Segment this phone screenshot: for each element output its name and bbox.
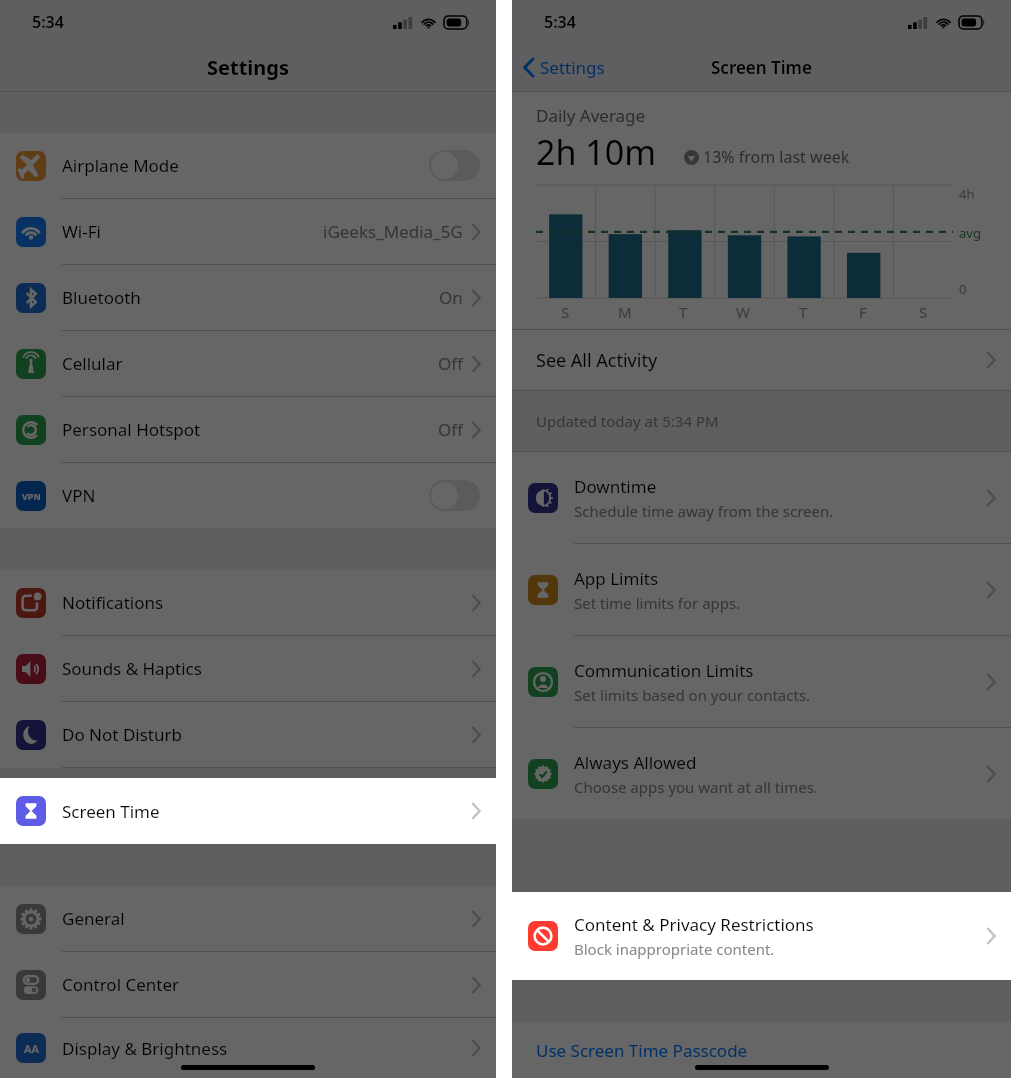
- staticText: 0: [959, 280, 967, 298]
- staticText: Off: [438, 418, 463, 441]
- staticText: Daily Average: [536, 104, 646, 127]
- staticText: M: [618, 302, 632, 322]
- button[interactable]: App Limits: [512, 544, 1011, 635]
- staticText: avg: [959, 224, 981, 242]
- button[interactable]: Always Allowed: [512, 728, 1011, 819]
- staticText: App Limits: [574, 567, 659, 590]
- staticText: Bluetooth: [62, 286, 439, 309]
- staticText: 2h 10m: [536, 129, 656, 175]
- staticText: S: [561, 302, 570, 322]
- staticText: Screen Time: [62, 800, 471, 823]
- button[interactable]: Airplane Mode: [0, 133, 496, 198]
- staticText: Always Allowed: [574, 751, 697, 774]
- staticText: 13% from last week: [703, 146, 850, 168]
- staticText: Set time limits for apps.: [574, 593, 741, 613]
- staticText: Updated today at 5:34 PM: [536, 411, 719, 431]
- staticText: 4h: [959, 185, 975, 203]
- button[interactable]: Notifications: [0, 570, 496, 635]
- staticText: Off: [438, 352, 463, 375]
- button[interactable]: Communication Limits: [512, 636, 1011, 727]
- staticText: AA: [24, 1041, 39, 1056]
- staticText: Settings: [540, 56, 605, 79]
- button[interactable]: Screen Time: [0, 778, 496, 844]
- staticText: Block inappropriate content.: [574, 939, 775, 959]
- button[interactable]: Content & Privacy Restrictions: [512, 892, 1011, 980]
- button[interactable]: Sounds & Haptics: [0, 636, 496, 701]
- staticText: Downtime: [574, 475, 657, 498]
- staticText: Personal Hotspot: [62, 418, 438, 441]
- staticText: General: [62, 907, 471, 930]
- button[interactable]: Use Screen Time Passcode: [512, 1022, 1011, 1078]
- staticText: 5:34: [544, 11, 576, 33]
- button[interactable]: Toggle: [429, 480, 480, 511]
- button[interactable]: Control Center: [0, 952, 496, 1017]
- staticText: T: [799, 302, 808, 322]
- staticText: On: [439, 286, 463, 309]
- staticText: Control Center: [62, 973, 471, 996]
- button[interactable]: Settings: [512, 56, 613, 79]
- button[interactable]: Toggle: [429, 150, 480, 181]
- staticText: Screen Time: [711, 56, 812, 79]
- staticText: See All Activity: [536, 348, 986, 373]
- button[interactable]: General: [0, 886, 496, 951]
- staticText: Sounds & Haptics: [62, 657, 471, 680]
- button[interactable]: Do Not Disturb: [0, 702, 496, 767]
- staticText: Choose apps you want at all times.: [574, 777, 818, 797]
- button[interactable]: Bluetooth: [0, 265, 496, 330]
- staticText: Display & Brightness: [62, 1037, 471, 1060]
- staticText: VPN: [62, 484, 429, 507]
- button[interactable]: Downtime: [512, 452, 1011, 543]
- staticText: F: [859, 302, 867, 322]
- staticText: Do Not Disturb: [62, 723, 471, 746]
- staticText: Set limits based on your contacts.: [574, 685, 811, 705]
- staticText: Airplane Mode: [62, 154, 429, 177]
- staticText: VPN: [22, 490, 41, 502]
- button[interactable]: AA: [0, 1018, 496, 1078]
- staticText: W: [736, 302, 750, 322]
- staticText: Wi-Fi: [62, 220, 323, 243]
- button[interactable]: VPN: [0, 463, 496, 528]
- staticText: Notifications: [62, 591, 471, 614]
- button[interactable]: Cellular: [0, 331, 496, 396]
- staticText: Use Screen Time Passcode: [536, 1039, 748, 1062]
- staticText: Settings: [207, 54, 289, 81]
- button[interactable]: Personal Hotspot: [0, 397, 496, 462]
- staticText: T: [679, 302, 688, 322]
- staticText: Communication Limits: [574, 659, 754, 682]
- button[interactable]: See All Activity: [512, 330, 1011, 390]
- staticText: iGeeks_Media_5G: [323, 220, 463, 243]
- staticText: 5:34: [32, 11, 64, 33]
- button[interactable]: Wi-Fi: [0, 199, 496, 264]
- staticText: S: [919, 302, 928, 322]
- staticText: Schedule time away from the screen.: [574, 501, 834, 521]
- staticText: Cellular: [62, 352, 438, 375]
- staticText: Content & Privacy Restrictions: [574, 913, 814, 936]
